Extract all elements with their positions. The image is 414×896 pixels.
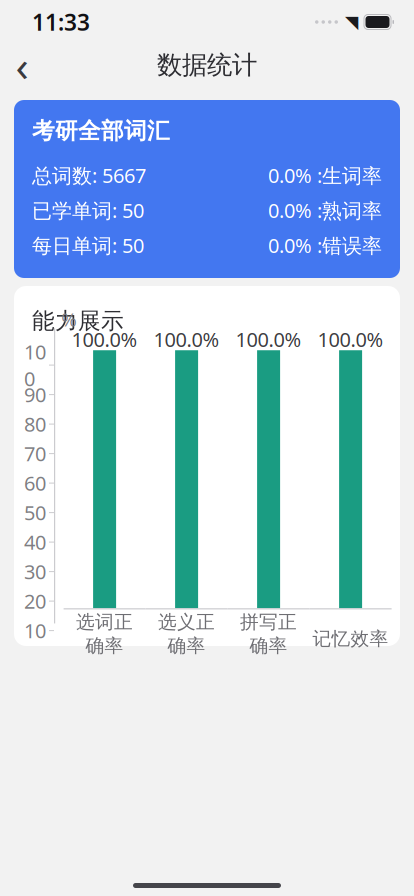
staticText: 10 — [24, 617, 46, 644]
staticText: 选义正 — [158, 610, 215, 633]
staticText: 总词数: 5667 — [32, 162, 146, 189]
staticText: 0.0% :生词率 — [268, 162, 382, 189]
staticText: 已学单词: 50 — [32, 197, 144, 224]
staticText: 20 — [24, 588, 46, 614]
staticText: 0.0% :错误率 — [268, 232, 382, 259]
staticText: ◥ — [345, 12, 358, 32]
staticText: 拼写正 — [240, 610, 297, 633]
staticText: 50 — [24, 499, 46, 526]
staticText: 数据统计 — [157, 49, 257, 80]
staticText: 70 — [24, 440, 46, 467]
staticText: 选词正 — [76, 610, 133, 633]
staticText: 0.0% :熟词率 — [268, 197, 382, 224]
staticText: ‹ — [15, 37, 28, 93]
staticText: 90 — [24, 381, 46, 408]
staticText: 能力展示 — [32, 307, 124, 335]
staticText: 100.0% — [72, 326, 138, 353]
staticText: 11:33 — [32, 7, 90, 37]
staticText: 考研全部词汇 — [32, 117, 170, 145]
staticText: 60 — [24, 470, 46, 496]
staticText: 100.0% — [236, 326, 302, 353]
staticText: 100.0% — [154, 326, 220, 353]
staticText: 100.0% — [318, 326, 384, 353]
staticText: 每日单词: 50 — [32, 232, 144, 259]
staticText: 确率 — [250, 634, 288, 657]
staticText: % — [61, 307, 77, 332]
staticText: 30 — [24, 558, 46, 585]
staticText: 80 — [24, 411, 46, 437]
staticText: 记忆效率 — [313, 627, 389, 650]
staticText: 100 — [24, 338, 46, 392]
staticText: 确率 — [86, 634, 124, 657]
staticText: 40 — [24, 529, 46, 555]
staticText: 确率 — [168, 634, 206, 657]
button[interactable]: Back — [0, 44, 44, 86]
